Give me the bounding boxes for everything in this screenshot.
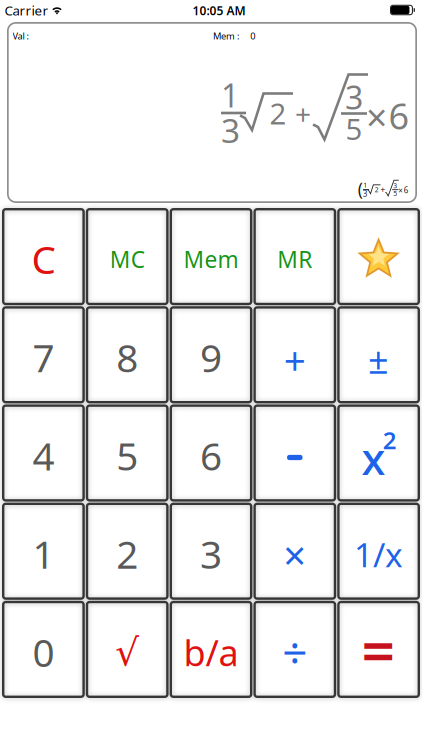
staticText: + bbox=[295, 95, 311, 133]
staticText: 10:05 AM bbox=[192, 2, 245, 18]
staticText: Mem bbox=[183, 244, 238, 274]
staticText: MR bbox=[277, 244, 312, 274]
staticText: MC bbox=[110, 244, 145, 274]
staticText: Mem : bbox=[213, 30, 240, 42]
staticText: 2 bbox=[116, 528, 138, 579]
staticText: 3 bbox=[345, 76, 363, 118]
staticText: 3 bbox=[363, 188, 368, 199]
staticText: = bbox=[362, 611, 396, 689]
staticText: 7 bbox=[32, 332, 54, 383]
staticText: ± bbox=[368, 336, 389, 384]
button[interactable]: ÷ bbox=[253, 601, 336, 698]
staticText: 3 bbox=[221, 108, 240, 152]
staticText: 3 bbox=[393, 181, 397, 190]
button[interactable]: 2 bbox=[86, 503, 169, 600]
button[interactable]: = bbox=[337, 601, 420, 698]
button[interactable]: ± bbox=[337, 306, 420, 403]
button[interactable]: x bbox=[337, 404, 420, 502]
staticText: ÷ bbox=[282, 622, 307, 681]
button[interactable]: 9 bbox=[170, 306, 252, 403]
staticText: + bbox=[380, 184, 385, 195]
staticText: Val : bbox=[12, 30, 29, 42]
staticText: 1 bbox=[32, 528, 54, 579]
button[interactable]: 8 bbox=[86, 306, 169, 403]
staticText: C bbox=[31, 233, 55, 285]
staticText: b/a bbox=[183, 628, 238, 676]
staticText: 1 bbox=[363, 181, 367, 190]
button[interactable]: √ bbox=[86, 601, 169, 698]
staticText: 4 bbox=[32, 430, 54, 481]
staticText: √ bbox=[115, 631, 139, 674]
button[interactable]: 7 bbox=[2, 306, 85, 403]
staticText: 0 bbox=[250, 30, 255, 42]
button[interactable]: 0 bbox=[2, 601, 85, 698]
staticText: 5 bbox=[393, 189, 397, 198]
button[interactable]: × bbox=[253, 503, 336, 600]
staticText: 6 bbox=[200, 430, 222, 481]
staticText: 3 bbox=[200, 528, 222, 579]
staticText: 2 bbox=[269, 93, 286, 132]
staticText: 5 bbox=[116, 430, 138, 481]
staticText: 6 bbox=[388, 92, 409, 139]
button[interactable]: 1/x bbox=[337, 503, 420, 600]
button[interactable]: + bbox=[253, 306, 336, 403]
staticText: 2 bbox=[375, 185, 379, 194]
button[interactable]: 6 bbox=[170, 404, 252, 502]
button[interactable]: 1 bbox=[2, 503, 85, 600]
staticText: + bbox=[284, 334, 306, 385]
button[interactable]: MC bbox=[86, 208, 169, 305]
staticText: ( bbox=[358, 177, 363, 200]
button[interactable]: 4 bbox=[2, 404, 85, 502]
staticText: 9 bbox=[200, 332, 222, 383]
staticText: 0 bbox=[32, 626, 54, 677]
staticText: × bbox=[366, 92, 387, 142]
staticText: × bbox=[398, 185, 403, 196]
staticText: x bbox=[362, 429, 386, 487]
staticText: 2 bbox=[383, 424, 397, 456]
button[interactable]: 5 bbox=[86, 404, 169, 502]
staticText: 8 bbox=[116, 332, 138, 383]
button[interactable] bbox=[337, 208, 420, 305]
staticText: 1/x bbox=[354, 532, 403, 576]
staticText: 6 bbox=[404, 185, 409, 195]
button[interactable] bbox=[253, 404, 336, 502]
button[interactable]: C bbox=[2, 208, 85, 305]
button[interactable]: 3 bbox=[170, 503, 252, 600]
staticText: 5 bbox=[345, 109, 362, 148]
staticText: Carrier bbox=[4, 1, 48, 19]
staticText: × bbox=[283, 528, 306, 581]
button[interactable]: b/a bbox=[170, 601, 252, 698]
button[interactable]: MR bbox=[253, 208, 336, 305]
button[interactable]: Mem bbox=[170, 208, 252, 305]
staticText: 1 bbox=[221, 74, 239, 116]
